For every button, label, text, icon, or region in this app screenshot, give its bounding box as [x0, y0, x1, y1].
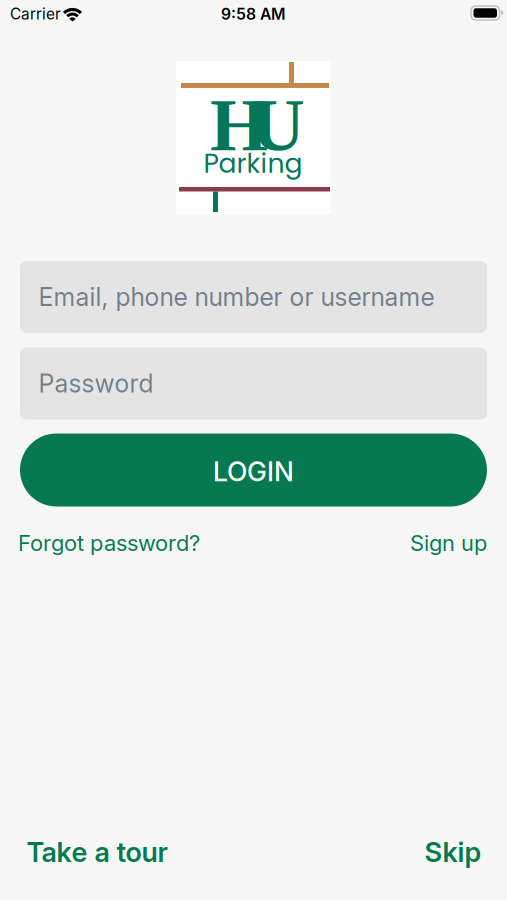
button[interactable]: Sign up	[410, 530, 487, 556]
staticText: Take a tour	[26, 835, 167, 869]
staticText: Email, phone number or username	[38, 282, 434, 312]
staticText: Sign up	[410, 530, 487, 556]
staticText: U	[251, 84, 305, 166]
staticText: Parking	[203, 145, 302, 182]
staticText: 9:58 AM	[221, 4, 286, 23]
staticText: H	[210, 84, 268, 166]
staticText: Forgot password?	[18, 530, 200, 556]
button[interactable]: Skip	[424, 835, 481, 869]
button[interactable]: Take a tour	[26, 835, 167, 869]
button[interactable]: LOGIN	[20, 433, 487, 506]
staticText: Skip	[424, 835, 481, 869]
button[interactable]: Forgot password?	[18, 530, 200, 556]
button[interactable]: Password	[20, 347, 487, 419]
staticText: Carrier	[10, 5, 61, 23]
button[interactable]: Email, phone number or username	[20, 261, 487, 333]
staticText: Password	[38, 368, 153, 399]
staticText: LOGIN	[213, 455, 294, 488]
